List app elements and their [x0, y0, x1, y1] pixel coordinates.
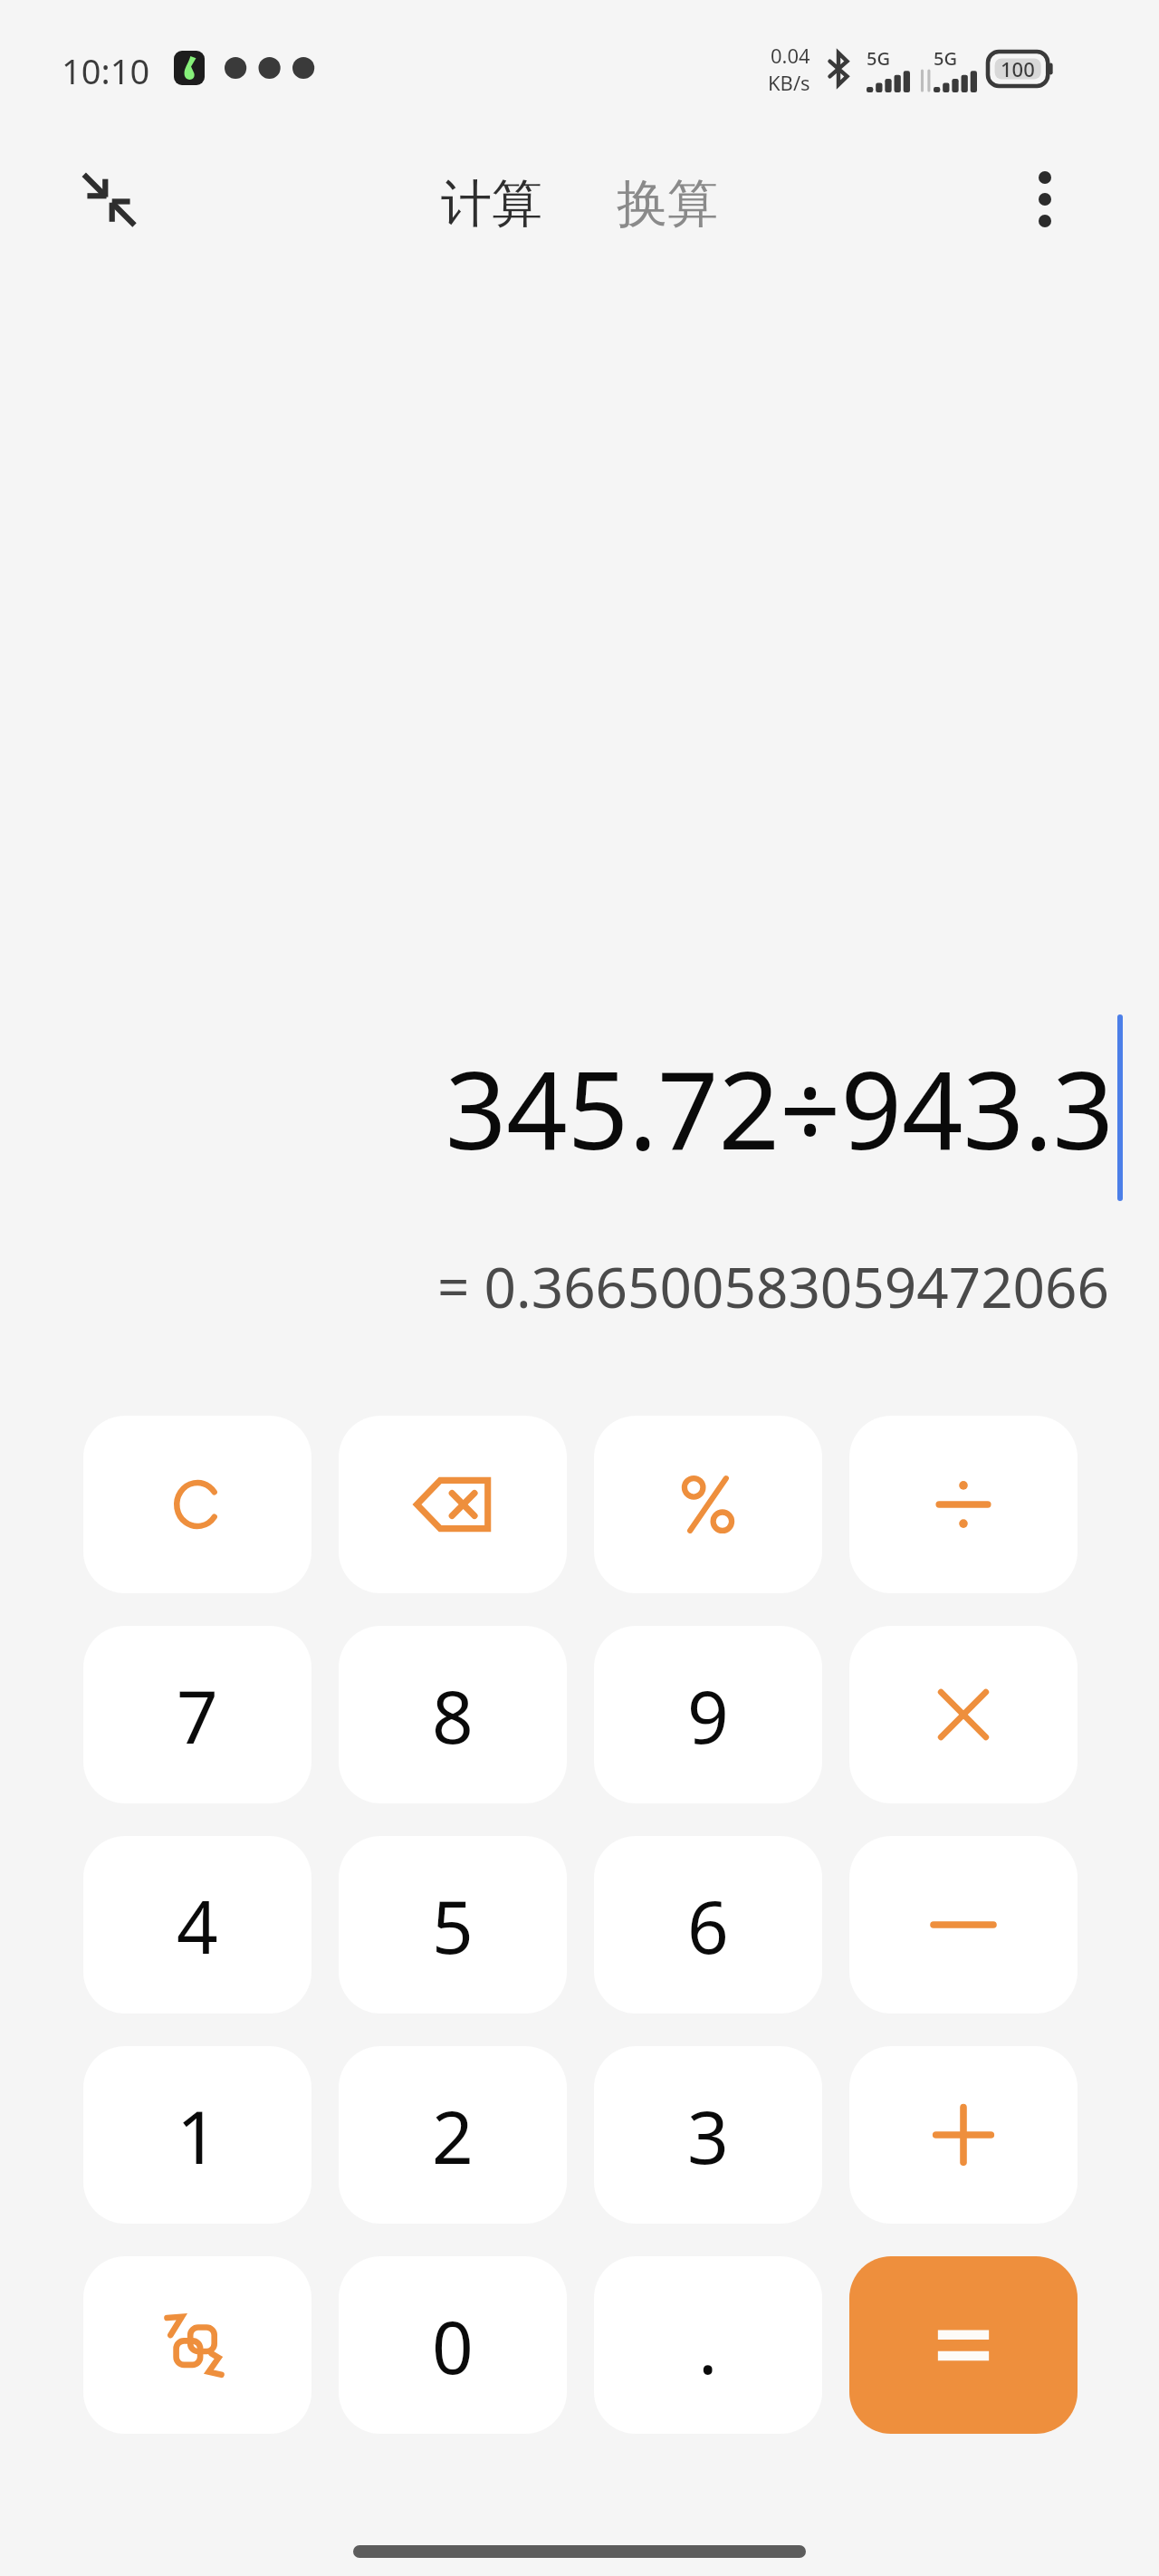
- staticText: 0: [432, 2296, 474, 2395]
- button[interactable]: 9: [594, 1626, 822, 1803]
- button[interactable]: Equals: [849, 2256, 1078, 2434]
- staticText: 10:10: [62, 47, 150, 94]
- staticText: .: [698, 2296, 718, 2395]
- staticText: 9: [687, 1666, 729, 1764]
- button[interactable]: 8: [339, 1626, 567, 1803]
- button[interactable]: 1: [83, 2046, 311, 2224]
- button[interactable]: Multiply: [849, 1626, 1078, 1803]
- button[interactable]: 0: [339, 2256, 567, 2434]
- staticText: = 0.366500583059472066: [437, 1248, 1110, 1324]
- button[interactable]: More options: [1001, 156, 1088, 243]
- staticText: 1: [177, 2086, 218, 2185]
- staticText: 345.72÷943.3: [445, 1035, 1114, 1181]
- staticText: 100: [1001, 55, 1035, 82]
- button[interactable]: 2: [339, 2046, 567, 2224]
- button[interactable]: Backspace: [339, 1416, 567, 1593]
- button[interactable]: [83, 1416, 311, 1593]
- button[interactable]: Subtract: [849, 1836, 1078, 2014]
- button[interactable]: Add: [849, 2046, 1078, 2224]
- staticText: 2: [432, 2086, 474, 2185]
- button[interactable]: 7: [83, 1626, 311, 1803]
- staticText: 5G: [867, 46, 890, 71]
- button[interactable]: .: [594, 2256, 822, 2434]
- button[interactable]: 5: [339, 1836, 567, 2014]
- button[interactable]: 6: [594, 1836, 822, 2014]
- button[interactable]: Handwriting input: [83, 2256, 311, 2434]
- staticText: 6: [687, 1876, 729, 1975]
- staticText: 8: [432, 1666, 474, 1764]
- button[interactable]: [594, 1416, 822, 1593]
- staticText: 5: [432, 1876, 474, 1975]
- staticText: 7: [177, 1666, 218, 1764]
- button[interactable]: 4: [83, 1836, 311, 2014]
- staticText: 0.04: [771, 42, 810, 69]
- staticText: 4: [177, 1876, 218, 1975]
- button[interactable]: Divide: [849, 1416, 1078, 1593]
- button[interactable]: 计算: [430, 165, 553, 244]
- staticText: 5G: [934, 46, 957, 71]
- staticText: 3: [687, 2086, 729, 2185]
- staticText: 计算: [441, 172, 542, 236]
- button[interactable]: Collapse: [65, 156, 152, 243]
- button[interactable]: 换算: [606, 165, 729, 244]
- button[interactable]: 3: [594, 2046, 822, 2224]
- staticText: KB/s: [768, 69, 810, 96]
- staticText: 换算: [617, 172, 718, 236]
